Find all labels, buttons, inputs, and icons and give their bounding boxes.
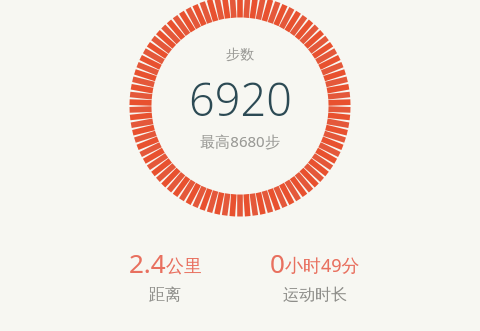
button[interactable]: 0 <box>240 245 390 305</box>
button[interactable]: 2.4 <box>90 245 240 305</box>
staticText: 6920 <box>189 68 292 129</box>
staticText: 2.4 <box>129 245 166 280</box>
staticText: 小时49分 <box>285 253 360 278</box>
button[interactable]: 步数 <box>140 46 340 151</box>
staticText: 步数 <box>226 46 254 64</box>
staticText: 距离 <box>149 285 181 305</box>
staticText: 0 <box>270 245 285 280</box>
staticText: 公里 <box>166 255 202 278</box>
staticText: 运动时长 <box>283 285 347 305</box>
staticText: 最高8680步 <box>200 131 280 151</box>
